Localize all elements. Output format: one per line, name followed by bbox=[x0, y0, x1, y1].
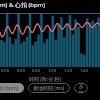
staticText: 接地時間 (ms) bbox=[33, 85, 65, 92]
staticText: 1:40 bbox=[80, 68, 88, 73]
staticText: 0:40 bbox=[32, 68, 40, 73]
button[interactable]: 心拍 (bpm) bbox=[0, 83, 24, 93]
staticText: 0:20 bbox=[17, 68, 25, 73]
staticText: 0:00 bbox=[1, 68, 9, 73]
button[interactable]: 歩幅 (m) bbox=[74, 83, 88, 93]
staticText: 1:00 bbox=[48, 68, 56, 73]
staticText: 心拍 (bpm) bbox=[0, 85, 19, 92]
staticText: 1:20 bbox=[64, 68, 72, 73]
button[interactable]: 接地時間 (ms) bbox=[28, 83, 70, 93]
staticText: (km) & 心拍 (bpm) bbox=[0, 1, 46, 9]
staticText: 時間 (時:分:秒) bbox=[29, 76, 61, 83]
staticText: 歩幅 (m) bbox=[79, 83, 83, 93]
